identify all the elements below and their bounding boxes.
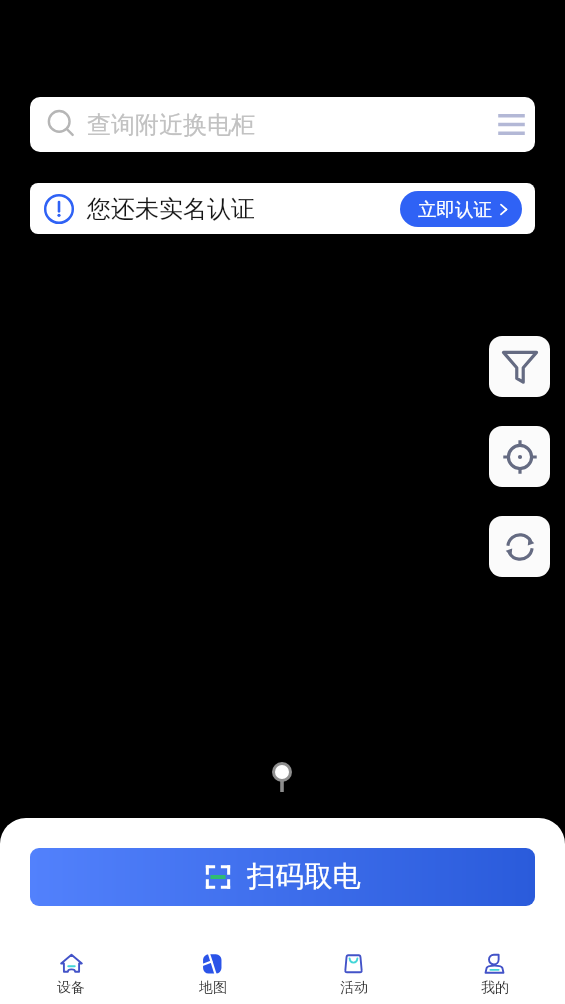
- staticText: 活动: [340, 979, 368, 997]
- button[interactable]: Menu: [500, 113, 523, 136]
- button[interactable]: Refresh: [489, 516, 550, 577]
- staticText: 我的: [481, 979, 509, 997]
- button[interactable]: 立即认证: [400, 191, 522, 227]
- button[interactable]: 地图: [142, 952, 283, 997]
- button[interactable]: 扫码取电: [30, 848, 535, 906]
- staticText: 设备: [57, 979, 85, 997]
- staticText: 扫码取电: [247, 859, 361, 895]
- button[interactable]: Filter: [489, 336, 550, 397]
- staticText: 查询附近换电柜: [87, 110, 255, 140]
- button[interactable]: 我的: [424, 952, 565, 997]
- staticText: 立即认证: [418, 198, 492, 221]
- button[interactable]: My location: [489, 426, 550, 487]
- staticText: 您还未实名认证: [87, 194, 255, 224]
- button[interactable]: 设备: [0, 952, 142, 997]
- staticText: 地图: [199, 979, 227, 997]
- button[interactable]: 查询附近换电柜: [30, 97, 535, 152]
- button[interactable]: 活动: [283, 952, 424, 997]
